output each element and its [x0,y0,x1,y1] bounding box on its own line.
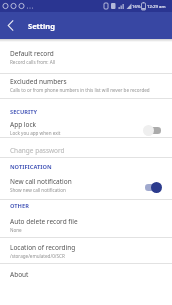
staticText: New call notification [10,177,72,186]
staticText: Record calls from: All [10,59,55,65]
staticText: /storage/emulated/0/SCR [10,253,65,259]
staticText: Auto delete record file [10,217,78,226]
staticText: Change password [10,146,65,155]
button[interactable] [143,182,162,193]
button[interactable]: Auto delete record file [0,213,172,236]
staticText: Calls to or from phone numbers in this l… [10,87,150,93]
staticText: Setting [28,21,55,31]
button[interactable]: About [0,263,172,285]
staticText: Location of recording [10,243,76,252]
button[interactable]: Excluded numbers [0,71,172,98]
staticText: 16% [132,3,141,9]
staticText: Show new call notification [10,187,66,193]
staticText: About [10,270,29,279]
button[interactable]: New call notification [0,173,172,196]
staticText: None [10,227,22,233]
staticText: Default record [10,49,54,58]
button[interactable]: App lock [0,116,172,139]
staticText: 12:29 am [147,3,166,9]
staticText: App lock [10,120,37,129]
staticText: SECURITY [10,108,38,116]
staticText: Excluded numbers [10,77,67,86]
button[interactable]: Change password [0,139,172,161]
staticText: Lock you app when exit [10,130,61,136]
button[interactable]: Default record [0,42,172,71]
button[interactable]: Location of recording [0,239,172,262]
staticText: NOTIFICATION [10,163,52,171]
staticText: OTHER [10,202,29,210]
button[interactable] [143,125,162,136]
